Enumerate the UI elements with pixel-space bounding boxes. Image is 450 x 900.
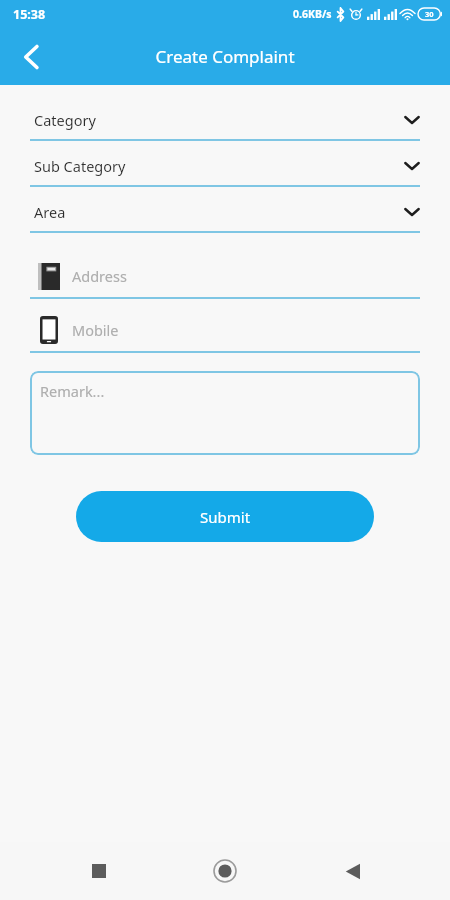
staticText: Remark... [40, 381, 105, 401]
staticText: Category [34, 110, 404, 130]
staticText: 15:38 [13, 6, 46, 23]
staticText: 30 [425, 9, 434, 19]
button[interactable]: Recents [71, 843, 127, 899]
button[interactable]: Back [8, 34, 54, 80]
staticText: 0.6KB/s [293, 7, 332, 21]
button[interactable]: Home [197, 843, 253, 899]
staticText: Sub Category [34, 156, 404, 176]
button[interactable]: Back [324, 843, 380, 899]
staticText: Submit [200, 507, 251, 527]
staticText: Create Complaint [155, 45, 295, 68]
button[interactable]: Submit [76, 491, 374, 542]
staticText: Area [34, 202, 404, 222]
button[interactable]: Mobile [30, 309, 420, 353]
button[interactable]: Area [30, 193, 420, 233]
staticText: Address [72, 266, 127, 286]
staticText: Mobile [72, 320, 119, 340]
button[interactable]: Address [30, 255, 420, 299]
button[interactable]: Remark... [30, 371, 420, 455]
button[interactable]: Category [30, 101, 420, 141]
button[interactable]: Sub Category [30, 147, 420, 187]
